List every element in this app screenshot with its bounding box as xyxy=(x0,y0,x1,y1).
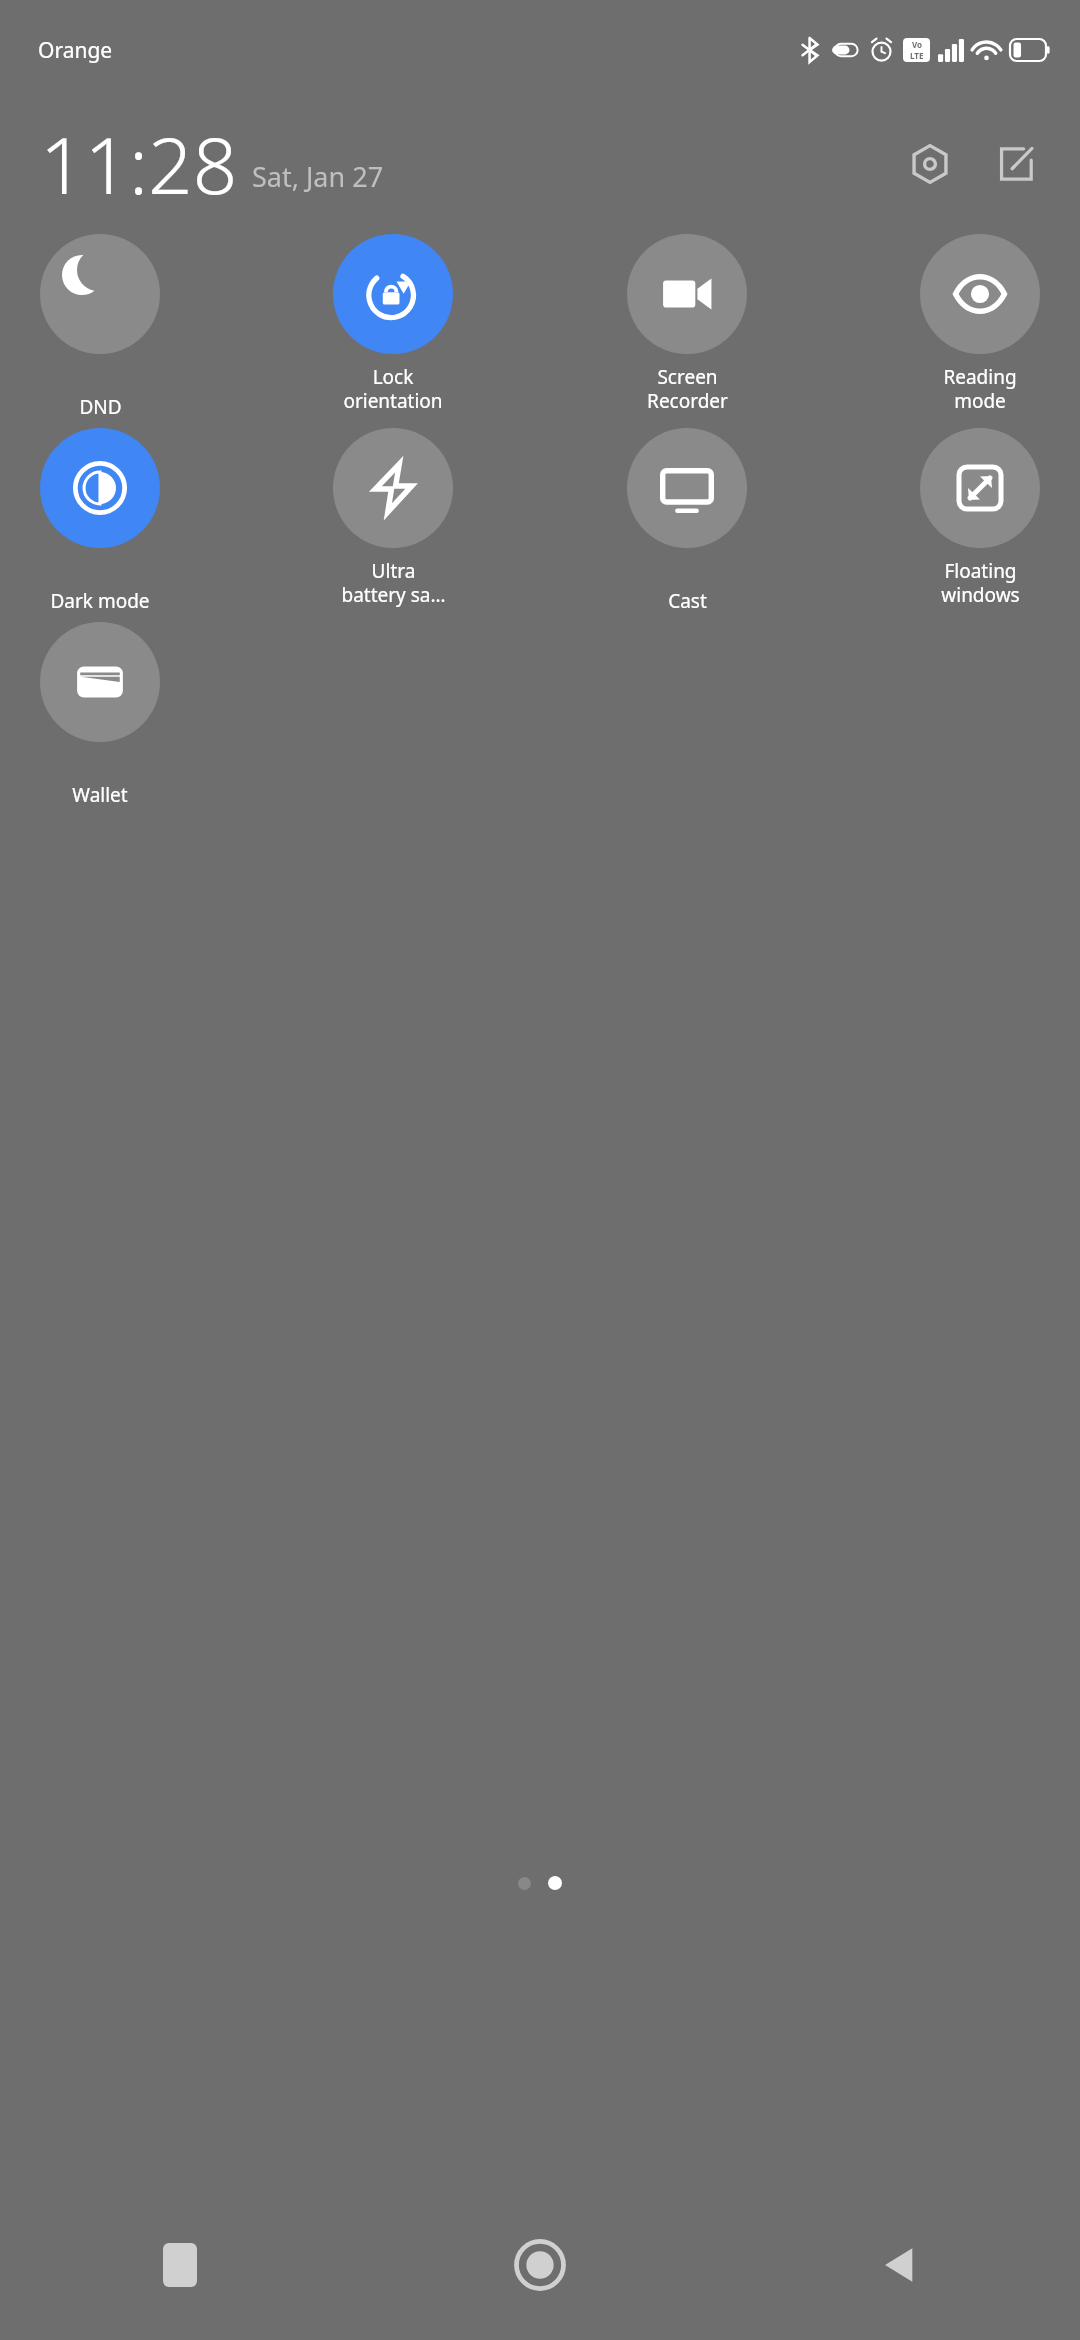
staticText: Reading mode xyxy=(943,364,1017,413)
button[interactable]: Floating windows xyxy=(920,428,1040,622)
staticText: DND xyxy=(79,394,122,420)
button[interactable]: DND xyxy=(40,234,160,428)
other: Wi-Fi xyxy=(973,39,1000,61)
staticText: Orange xyxy=(38,36,113,65)
button[interactable]: Edit tiles xyxy=(984,132,1048,196)
staticText: Wallet xyxy=(72,782,128,808)
staticText: Dark mode xyxy=(50,588,150,614)
staticText: Screen Recorder xyxy=(647,364,728,413)
button[interactable]: Cast xyxy=(627,428,747,622)
button[interactable]: Screen Recorder xyxy=(627,234,747,428)
other: Battery 23% xyxy=(1010,39,1050,61)
other: Bluetooth xyxy=(799,37,821,63)
button[interactable]: Ultra battery sa… xyxy=(333,428,453,622)
button[interactable]: Lock orientation xyxy=(333,234,453,428)
staticText: Vo xyxy=(912,39,923,50)
button[interactable]: Reading mode xyxy=(920,234,1040,428)
staticText: Cast xyxy=(668,588,707,614)
staticText: Sat, Jan 27 xyxy=(252,158,384,195)
other: Signal strength xyxy=(938,39,964,62)
button[interactable]: Settings xyxy=(898,132,962,196)
button[interactable]: Wallet xyxy=(40,622,160,816)
button[interactable]: Dark mode xyxy=(40,428,160,622)
other: Alarm xyxy=(869,37,894,63)
staticText: Floating windows xyxy=(941,558,1020,607)
staticText: Lock orientation xyxy=(343,364,443,413)
staticText: Ultra battery sa… xyxy=(341,558,446,607)
other: Earbuds case xyxy=(830,39,860,61)
button[interactable]: Back xyxy=(720,2190,1080,2340)
button[interactable]: Home xyxy=(360,2190,720,2340)
button[interactable]: Recent apps xyxy=(0,2190,360,2340)
staticText: 11:28 xyxy=(40,111,238,217)
staticText: LTE xyxy=(910,50,924,61)
